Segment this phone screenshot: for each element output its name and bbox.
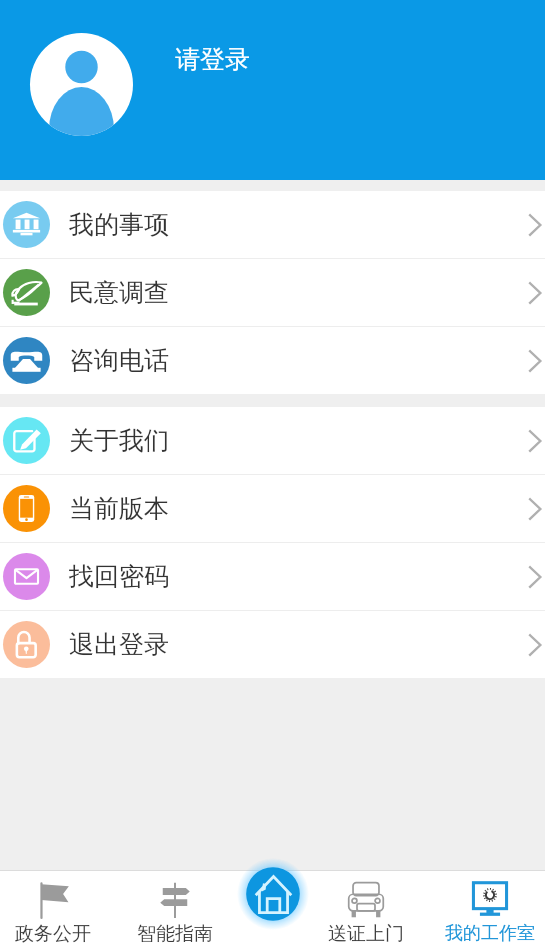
button[interactable]: 送证上门 bbox=[296, 870, 435, 946]
staticText: 关于我们 bbox=[69, 425, 169, 456]
button[interactable]: 首页 bbox=[237, 858, 309, 930]
staticText: 退出登录 bbox=[69, 629, 169, 660]
staticText: 当前版本 bbox=[69, 493, 169, 524]
staticText: 民意调查 bbox=[69, 277, 169, 308]
staticText: 政务公开 bbox=[15, 922, 91, 946]
button[interactable]: 请登录 bbox=[0, 0, 545, 180]
staticText: 咨询电话 bbox=[69, 345, 169, 376]
button[interactable]: 退出登录 bbox=[0, 611, 545, 678]
button[interactable]: 民意调查 bbox=[0, 259, 545, 326]
button[interactable]: 我的工作室 bbox=[435, 870, 545, 945]
staticText: 我的工作室 bbox=[445, 922, 535, 945]
button[interactable]: 找回密码 bbox=[0, 543, 545, 610]
button[interactable]: 当前版本 bbox=[0, 475, 545, 542]
staticText: 请登录 bbox=[175, 44, 250, 75]
button[interactable]: 咨询电话 bbox=[0, 327, 545, 394]
staticText: 找回密码 bbox=[69, 561, 169, 592]
staticText: 智能指南 bbox=[137, 922, 213, 946]
button[interactable]: 智能指南 bbox=[106, 870, 243, 946]
staticText: 送证上门 bbox=[328, 922, 404, 946]
button[interactable]: 我的事项 bbox=[0, 191, 545, 258]
staticText: 我的事项 bbox=[69, 209, 169, 240]
button[interactable]: 政务公开 bbox=[0, 870, 106, 946]
button[interactable]: 关于我们 bbox=[0, 407, 545, 474]
